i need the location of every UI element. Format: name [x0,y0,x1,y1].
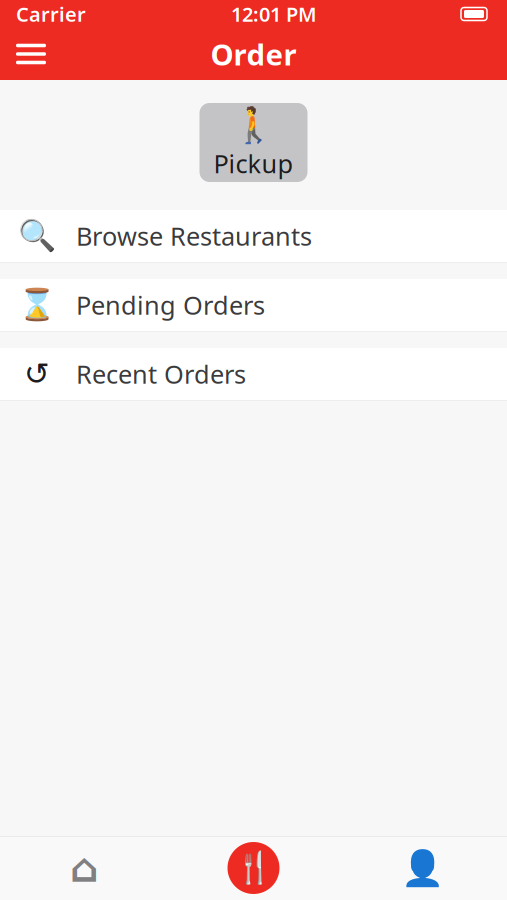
button[interactable]: Home [0,836,169,900]
staticText: ↺ [24,357,50,391]
staticText: Carrier [16,1,86,27]
staticText: ⌂ [70,845,99,891]
staticText: ⌛ [18,287,56,322]
staticText: Order [210,34,296,73]
button[interactable]: 🚶 [199,103,307,182]
staticText: 12:01 PM [231,1,317,27]
staticText: 👤 [401,848,444,888]
staticText: Pending Orders [76,288,265,322]
staticText: 🚶 [232,105,275,144]
staticText: Pickup [213,146,293,180]
button[interactable]: Profile [338,836,507,900]
staticText: Browse Restaurants [76,219,312,253]
button[interactable]: Menu [4,30,58,78]
button[interactable]: ⌛ [0,279,507,332]
button[interactable]: Order [169,836,338,900]
staticText: 🔍 [18,218,56,253]
button[interactable]: ↺ [0,348,507,401]
button[interactable]: 🔍 [0,210,507,263]
staticText: Recent Orders [76,357,246,391]
staticText: 🍴 [234,850,272,885]
